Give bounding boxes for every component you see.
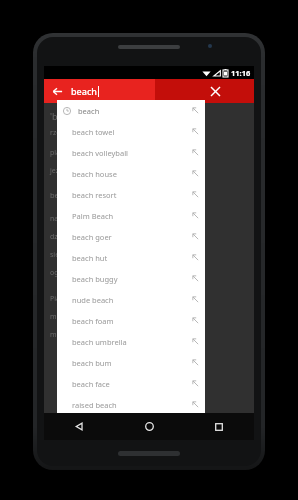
staticText: rzeczownik	[50, 128, 87, 138]
staticText: miękki ze wszystkich plaż.	[50, 312, 135, 322]
button[interactable]: Clear query	[204, 80, 226, 102]
staticText: beach bum	[72, 358, 192, 368]
button[interactable]: Recent apps	[184, 413, 254, 440]
staticText: dzieci bawiły się na plaży.	[50, 232, 133, 242]
button[interactable]: beach goer	[57, 226, 205, 247]
staticText: beach	[71, 85, 97, 97]
button[interactable]: beach resort	[57, 184, 205, 205]
staticText: beach resort	[72, 190, 192, 200]
staticText: nude beach	[72, 295, 192, 305]
staticText: jeziorze	[50, 166, 76, 176]
staticText: beach goer	[72, 232, 192, 242]
button[interactable]: beach	[57, 100, 205, 121]
staticText: beach towel	[72, 127, 192, 137]
staticText: Piasek na plaży jest najbardziej	[50, 294, 152, 304]
staticText: beach buggy	[72, 274, 192, 284]
staticText: 11:16	[231, 68, 251, 78]
staticText: ogromny wieloryb wypłynął na brzeg.	[50, 268, 173, 278]
staticText: beach volleyball	[72, 148, 192, 158]
staticText: beach	[78, 106, 192, 116]
staticText: siedział przy plaży całe życie.	[50, 250, 144, 260]
staticText: plaża; brzeg; wybrzeże; plaża na	[50, 148, 156, 158]
staticText: beach face	[72, 379, 192, 389]
staticText: raised beach	[72, 400, 192, 410]
staticText: beach umbrella	[72, 337, 192, 347]
button[interactable]: beach volleyball	[57, 142, 205, 163]
button[interactable]: beach hut	[57, 247, 205, 268]
button[interactable]: nude beach	[57, 289, 205, 310]
staticText: beach foam	[72, 316, 192, 326]
button[interactable]: Back	[44, 413, 114, 440]
button[interactable]: beach umbrella	[57, 331, 205, 352]
button[interactable]: raised beach	[57, 394, 205, 415]
button[interactable]: beach face	[57, 373, 205, 394]
button[interactable]: Back	[46, 80, 68, 102]
staticText: na plaży był lodziarz.	[50, 214, 118, 224]
button[interactable]: beach foam	[57, 310, 205, 331]
staticText: mewy szukają na plaży jedzenia	[50, 330, 154, 340]
staticText: Palm Beach	[72, 211, 192, 221]
button[interactable]: Home	[114, 413, 184, 440]
button[interactable]: beach towel	[57, 121, 205, 142]
button[interactable]: beach buggy	[57, 268, 205, 289]
button[interactable]: Palm Beach	[57, 205, 205, 226]
button[interactable]: beach house	[57, 163, 205, 184]
staticText: beach ◑ (Tom	[50, 190, 104, 200]
button[interactable]: beach bum	[57, 352, 205, 373]
staticText: beach house	[72, 169, 192, 179]
staticText: beach hut	[72, 253, 192, 263]
staticText: 'beach	[50, 110, 78, 122]
